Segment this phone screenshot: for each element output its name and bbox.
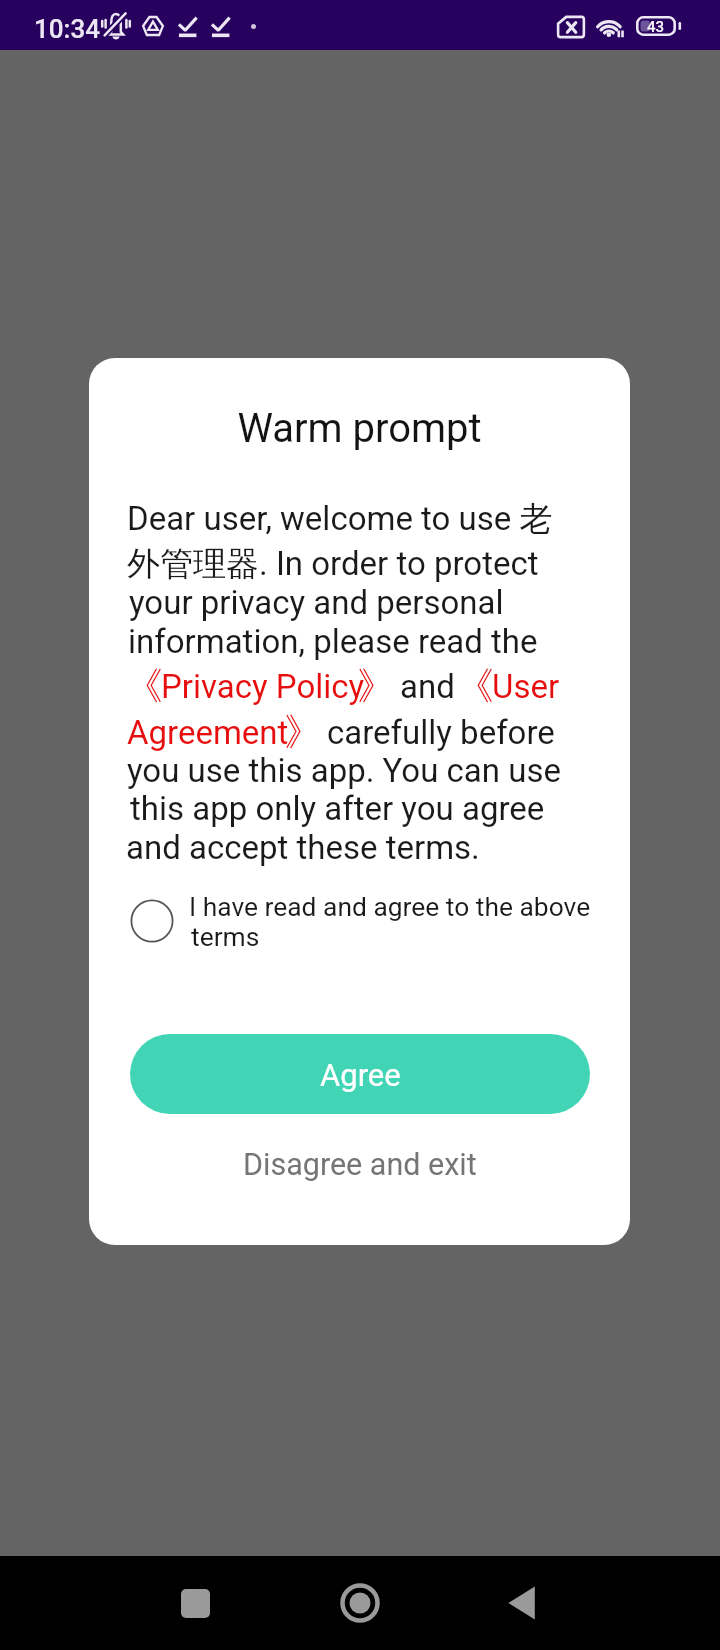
staticText: carefully before: [327, 713, 555, 752]
staticText: 外管理器. In order to protect: [127, 543, 539, 585]
staticText: Privacy Policy: [161, 667, 365, 706]
button[interactable]: Agree: [130, 1034, 590, 1114]
button[interactable]: Recents: [162, 1570, 228, 1636]
button[interactable]: User Agreement: [475, 666, 561, 708]
button[interactable]: Home: [327, 1570, 393, 1636]
staticText: 《: [125, 662, 163, 710]
staticText: and accept these terms.: [126, 828, 480, 867]
staticText: terms: [191, 922, 260, 953]
staticText: 10:34: [34, 14, 100, 44]
staticText: Agreement: [127, 713, 289, 752]
staticText: your privacy and personal: [129, 583, 504, 622]
button[interactable]: User Agreement: [126, 712, 306, 754]
button[interactable]: Disagree and exit: [89, 1130, 630, 1215]
staticText: you use this app. You can use: [127, 751, 561, 790]
staticText: Disagree and exit: [243, 1147, 477, 1183]
button[interactable]: Back: [493, 1570, 559, 1636]
staticText: information, please read the: [128, 622, 538, 661]
staticText: 43: [647, 18, 665, 36]
staticText: 》: [357, 662, 395, 710]
staticText: and: [400, 667, 455, 706]
staticText: 》: [284, 708, 322, 756]
staticText: this app only after you agree: [130, 789, 545, 828]
staticText: 《: [456, 662, 494, 710]
staticText: Dear user, welcome to use 老: [127, 498, 553, 540]
staticText: Agree: [320, 1057, 401, 1093]
staticText: I have read and agree to the above: [189, 892, 591, 923]
button[interactable]: Privacy Policy: [145, 666, 383, 708]
staticText: Warm prompt: [89, 405, 630, 452]
staticText: User: [492, 667, 560, 706]
button[interactable]: I have read and agree to the above terms: [129, 898, 175, 944]
